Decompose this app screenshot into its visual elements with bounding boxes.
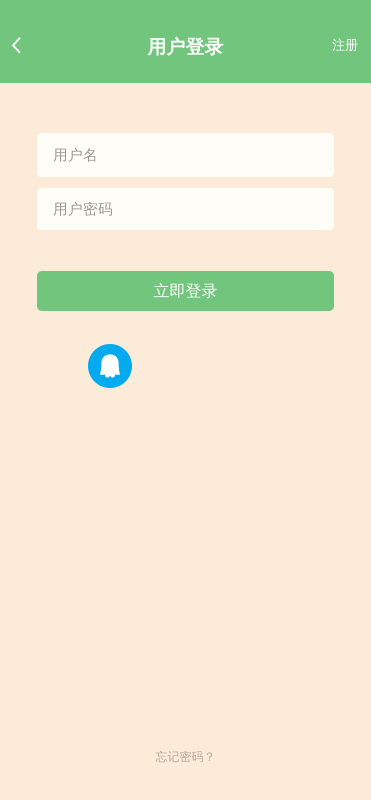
button[interactable]: 用户名	[37, 133, 334, 177]
button[interactable]: Back	[1, 30, 31, 60]
staticText: 用户登录	[147, 35, 223, 58]
button[interactable]: 用户密码	[37, 188, 334, 230]
button[interactable]: 忘记密码？	[139, 741, 231, 772]
staticText: 用户名	[53, 146, 98, 164]
staticText: 用户密码	[53, 200, 113, 218]
button[interactable]: Sign in with QQ	[88, 344, 132, 388]
staticText: 注册	[332, 37, 358, 53]
button[interactable]: 注册	[332, 30, 371, 60]
button[interactable]: 立即登录	[37, 271, 334, 311]
staticText: 立即登录	[153, 281, 217, 301]
staticText: 忘记密码？	[155, 749, 215, 764]
